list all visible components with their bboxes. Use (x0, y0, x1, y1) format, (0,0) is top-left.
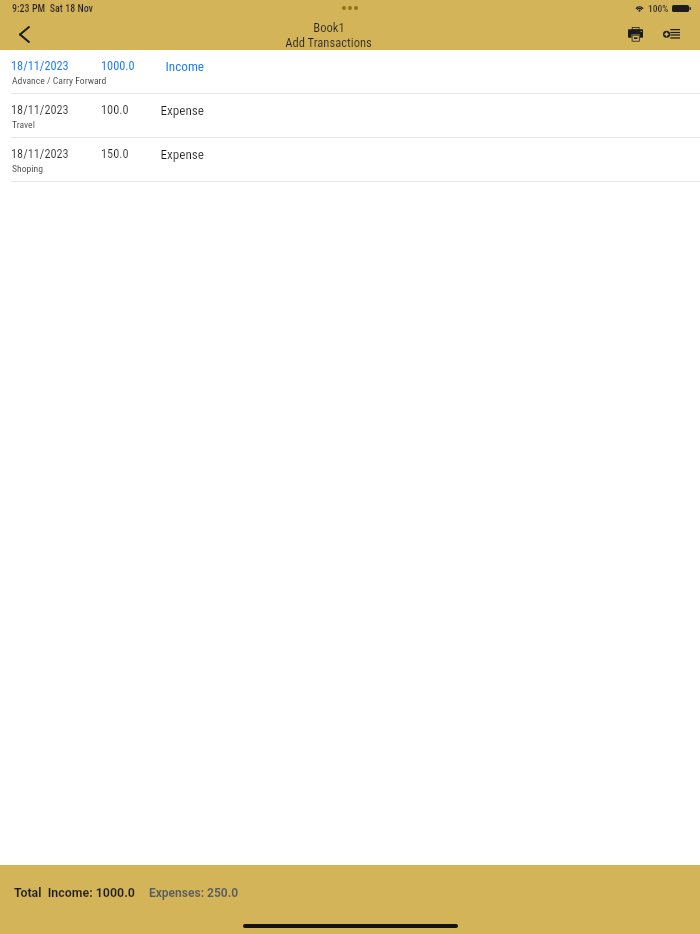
staticText: Add Transactions (285, 35, 372, 50)
staticText: Total Income: 1000.0 (14, 885, 135, 900)
staticText: 9:23 PM Sat 18 Nov (12, 3, 93, 15)
staticText: Income (158, 59, 204, 74)
staticText: Travel (12, 119, 35, 130)
staticText: 18/11/2023 (11, 103, 101, 117)
staticText: Expense (158, 103, 204, 118)
staticText: 1000.0 (101, 59, 158, 73)
button[interactable]: 18/11/2023 (0, 50, 700, 94)
staticText: 100% (648, 3, 669, 14)
staticText: 18/11/2023 (11, 147, 101, 161)
button[interactable]: 18/11/2023 (0, 94, 700, 138)
staticText: Advance / Carry Forward (12, 75, 107, 86)
button[interactable]: Back (10, 20, 38, 48)
staticText: Expenses: 250.0 (149, 886, 239, 900)
staticText: 18/11/2023 (11, 59, 101, 73)
staticText: 150.0 (101, 147, 158, 161)
button[interactable]: Add transaction (657, 20, 685, 48)
staticText: 100.0 (101, 103, 158, 117)
staticText: Book1 (313, 20, 345, 35)
staticText: Shoping (12, 163, 44, 174)
button[interactable]: Print (621, 20, 649, 48)
button[interactable]: 18/11/2023 (0, 138, 700, 182)
staticText: Expense (158, 147, 204, 162)
